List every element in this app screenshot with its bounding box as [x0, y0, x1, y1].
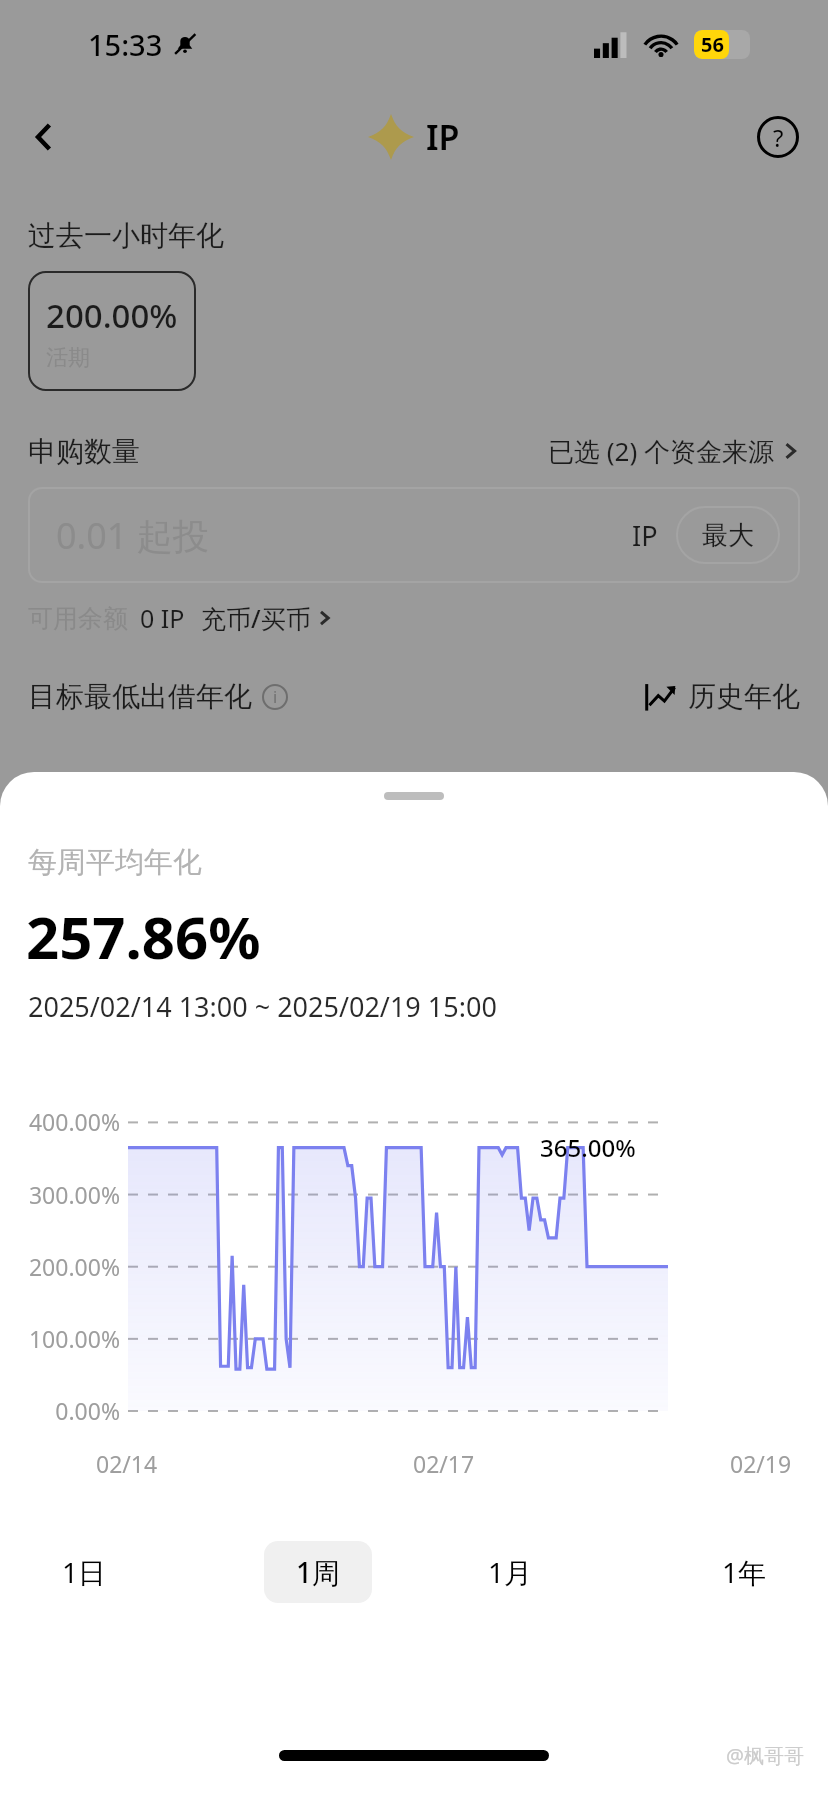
button[interactable]: 历史年化 — [644, 679, 800, 714]
staticText: 充币/买币 — [201, 601, 311, 635]
staticText: IP — [426, 114, 460, 160]
staticText: 200.00% — [0, 1251, 120, 1282]
button[interactable]: 0.01 起投 — [28, 487, 800, 583]
button[interactable]: 1年 — [690, 1541, 798, 1603]
staticText: 可用余额 — [28, 603, 128, 634]
staticText: 15:33 — [88, 25, 163, 64]
staticText: 每周平均年化 — [28, 844, 202, 881]
staticText: 02/14 — [96, 1448, 158, 1479]
staticText: 活期 — [46, 344, 90, 372]
staticText: 1周 — [296, 1553, 341, 1591]
staticText: 0.01 起投 — [56, 511, 209, 560]
staticText: 56 — [701, 31, 724, 58]
staticText: 365.00% — [540, 1131, 636, 1164]
button[interactable]: 已选 (2) 个资金来源 — [548, 433, 800, 469]
staticText: 已选 (2) 个资金来源 — [548, 433, 774, 469]
staticText: ? — [773, 121, 784, 154]
staticText: 过去一小时年化 — [28, 218, 224, 253]
staticText: 300.00% — [0, 1179, 120, 1210]
staticText: i — [273, 686, 278, 708]
staticText: 0.00% — [0, 1395, 120, 1426]
staticText: 申购数量 — [28, 434, 140, 469]
staticText: 最大 — [702, 519, 754, 552]
button[interactable]: 最大 — [676, 506, 780, 564]
button[interactable]: 200.00% — [28, 271, 196, 391]
button[interactable]: 充币/买币 — [201, 601, 333, 635]
staticText: 400.00% — [0, 1106, 120, 1137]
staticText: 1年 — [722, 1553, 767, 1591]
staticText: 1日 — [62, 1553, 107, 1591]
button[interactable]: Back — [14, 107, 74, 167]
staticText: 257.86% — [26, 897, 261, 976]
staticText: IP — [632, 517, 658, 554]
staticText: 2025/02/14 13:00 ~ 2025/02/19 15:00 — [28, 988, 497, 1025]
button[interactable]: Help — [748, 107, 808, 167]
staticText: 02/19 — [730, 1448, 792, 1479]
staticText: 100.00% — [0, 1323, 120, 1354]
staticText: 02/17 — [413, 1448, 475, 1479]
button[interactable]: 1周 — [264, 1541, 372, 1603]
staticText: 历史年化 — [688, 679, 800, 714]
button[interactable]: 1月 — [456, 1541, 564, 1603]
staticText: 1月 — [488, 1553, 533, 1591]
staticText: 目标最低出借年化 — [28, 679, 252, 714]
staticText: 0 IP — [140, 601, 185, 635]
staticText: 200.00% — [46, 293, 178, 338]
button[interactable]: 1日 — [30, 1541, 138, 1603]
staticText: @枫哥哥 — [726, 1742, 804, 1769]
